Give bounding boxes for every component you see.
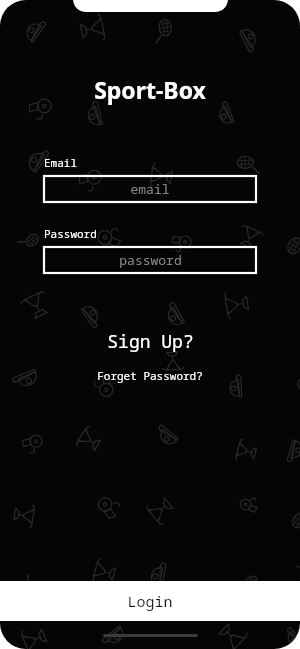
button[interactable]: Sign Up? bbox=[0, 329, 300, 354]
staticText: Sign Up? bbox=[107, 329, 194, 354]
staticText: password bbox=[119, 251, 182, 269]
button[interactable]: Login bbox=[0, 581, 300, 621]
button[interactable]: Password bbox=[44, 247, 256, 273]
button[interactable]: Email bbox=[44, 176, 256, 202]
staticText: Sport-Box bbox=[0, 74, 300, 105]
staticText: Login bbox=[127, 591, 173, 611]
staticText: email bbox=[130, 180, 170, 198]
staticText: Email bbox=[44, 155, 77, 170]
button[interactable]: Forget Password? bbox=[0, 368, 300, 383]
staticText: Forget Password? bbox=[97, 368, 203, 383]
staticText: Password bbox=[44, 226, 97, 241]
